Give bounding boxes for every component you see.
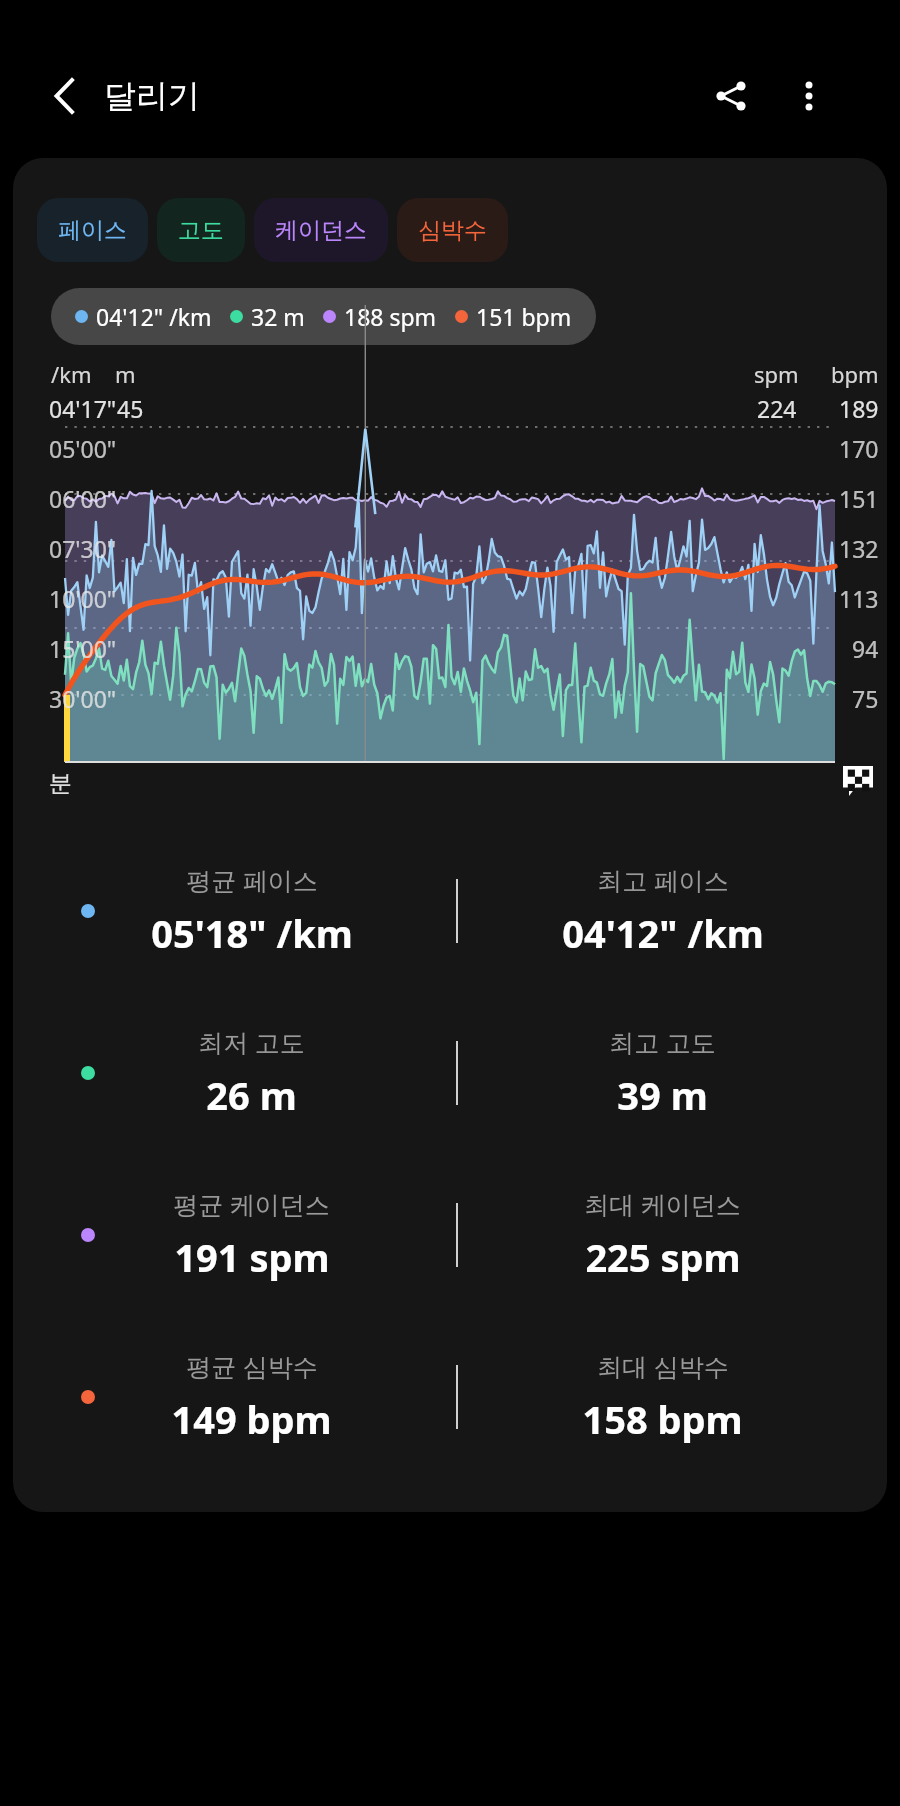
staticText: 151 xyxy=(839,483,879,514)
staticText: 심박수 xyxy=(418,216,487,245)
button[interactable]: 심박수 xyxy=(397,198,508,262)
staticText: 최대 심박수 xyxy=(597,1349,729,1383)
staticText: spm xyxy=(754,359,799,389)
staticText: 케이던스 xyxy=(275,216,367,245)
staticText: 158 bpm xyxy=(582,1393,743,1445)
staticText: 225 spm xyxy=(585,1231,741,1283)
staticText: 224 xyxy=(757,393,797,424)
button[interactable]: 평균 케이던스 xyxy=(13,1154,887,1316)
staticText: 07'30" xyxy=(49,533,117,564)
staticText: 151 bpm xyxy=(476,301,572,332)
button[interactable]: Share xyxy=(702,67,760,125)
staticText: 평균 페이스 xyxy=(186,863,318,897)
staticText: 32 m xyxy=(251,301,305,332)
staticText: bpm xyxy=(831,359,879,389)
staticText: 39 m xyxy=(617,1069,708,1121)
staticText: 15'00" xyxy=(49,633,117,664)
staticText: 최저 고도 xyxy=(198,1025,305,1059)
button[interactable]: More options xyxy=(780,67,838,125)
staticText: 평균 심박수 xyxy=(186,1349,318,1383)
staticText: 26 m xyxy=(206,1069,297,1121)
staticText: 04'17" xyxy=(49,393,117,424)
staticText: 191 spm xyxy=(174,1231,330,1283)
staticText: 05'00" xyxy=(49,433,117,464)
staticText: 04'12" /km xyxy=(562,907,764,959)
button[interactable]: 페이스 xyxy=(37,198,148,262)
staticText: 06'00" xyxy=(49,483,117,514)
staticText: 평균 케이던스 xyxy=(173,1187,330,1221)
staticText: 45 xyxy=(117,393,144,424)
staticText: 113 xyxy=(839,583,879,614)
staticText: 달리기 xyxy=(104,76,200,116)
staticText: 분 xyxy=(49,769,72,798)
button[interactable]: 케이던스 xyxy=(254,198,388,262)
staticText: 132 xyxy=(839,533,879,564)
staticText: 페이스 xyxy=(58,216,127,245)
staticText: 30'00" xyxy=(49,683,117,714)
staticText: 188 spm xyxy=(344,301,437,332)
staticText: 최고 고도 xyxy=(609,1025,716,1059)
staticText: 최대 케이던스 xyxy=(584,1187,741,1221)
staticText: /km xyxy=(51,359,92,389)
staticText: 149 bpm xyxy=(171,1393,332,1445)
button[interactable]: 평균 심박수 xyxy=(13,1316,887,1478)
staticText: 189 xyxy=(839,393,879,424)
staticText: 05'18" /km xyxy=(151,907,353,959)
button[interactable]: 평균 페이스 xyxy=(13,830,887,992)
staticText: 170 xyxy=(839,433,879,464)
staticText: 최고 페이스 xyxy=(597,863,729,897)
staticText: 04'12" /km xyxy=(96,301,212,332)
staticText: 94 xyxy=(852,633,879,664)
button[interactable]: 고도 xyxy=(157,198,245,262)
staticText: m xyxy=(115,359,136,389)
staticText: 10'00" xyxy=(49,583,117,614)
staticText: 75 xyxy=(852,683,879,714)
button[interactable]: 최저 고도 xyxy=(13,992,887,1154)
button[interactable]: Back xyxy=(32,68,88,124)
staticText: 고도 xyxy=(178,216,224,245)
